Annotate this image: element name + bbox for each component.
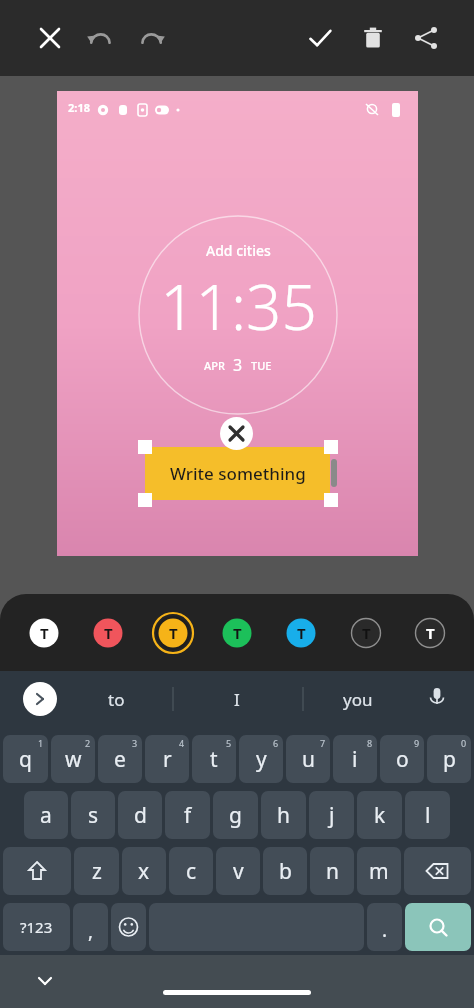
- button[interactable]: Backspace: [404, 847, 471, 895]
- staticText: T: [233, 623, 242, 643]
- button[interactable]: you: [310, 677, 406, 721]
- staticText: T: [362, 623, 371, 643]
- button[interactable]: q: [3, 735, 48, 783]
- button[interactable]: Text color 2: [86, 611, 130, 655]
- staticText: 5: [226, 737, 232, 749]
- button[interactable]: l: [405, 791, 450, 839]
- staticText: u: [302, 745, 315, 774]
- button[interactable]: .: [367, 903, 402, 951]
- button[interactable]: Search: [405, 903, 471, 951]
- button[interactable]: x: [122, 847, 166, 895]
- staticText: ?123: [20, 917, 53, 937]
- staticText: T: [40, 623, 49, 643]
- button[interactable]: Redo: [132, 18, 172, 58]
- staticText: b: [279, 857, 292, 886]
- staticText: s: [88, 801, 99, 830]
- button[interactable]: ?123: [3, 903, 70, 951]
- button[interactable]: g: [213, 791, 258, 839]
- staticText: 6: [273, 737, 279, 749]
- button[interactable]: Delete: [353, 18, 393, 58]
- button[interactable]: c: [169, 847, 213, 895]
- staticText: you: [343, 688, 373, 711]
- staticText: TUE: [251, 358, 272, 373]
- button[interactable]: j: [309, 791, 354, 839]
- button[interactable]: r: [145, 735, 189, 783]
- button[interactable]: Close: [30, 18, 70, 58]
- button[interactable]: ,: [73, 903, 108, 951]
- button[interactable]: d: [118, 791, 162, 839]
- staticText: 4: [179, 737, 185, 749]
- button[interactable]: p: [427, 735, 471, 783]
- button[interactable]: s: [71, 791, 115, 839]
- button[interactable]: Share: [406, 18, 446, 58]
- button[interactable]: to: [68, 677, 164, 721]
- button[interactable]: Undo: [80, 18, 120, 58]
- staticText: c: [186, 857, 197, 886]
- staticText: a: [40, 801, 52, 830]
- staticText: e: [114, 745, 126, 774]
- button[interactable]: m: [357, 847, 401, 895]
- button[interactable]: i: [333, 735, 377, 783]
- button[interactable]: n: [310, 847, 354, 895]
- button[interactable]: Text color 5: [279, 611, 323, 655]
- button[interactable]: f: [165, 791, 210, 839]
- staticText: 9: [414, 737, 420, 749]
- staticText: 1: [38, 737, 44, 749]
- staticText: T: [104, 623, 113, 643]
- button[interactable]: I: [189, 677, 285, 721]
- button[interactable]: Text color 1: [22, 611, 66, 655]
- staticText: f: [184, 801, 192, 830]
- button[interactable]: u: [286, 735, 330, 783]
- staticText: p: [443, 745, 456, 774]
- button[interactable]: Text color 6: [344, 611, 388, 655]
- button[interactable]: Text color 4: [215, 611, 259, 655]
- button[interactable]: e: [98, 735, 142, 783]
- button[interactable]: w: [51, 735, 95, 783]
- staticText: q: [19, 745, 32, 774]
- staticText: to: [108, 688, 125, 711]
- staticText: t: [210, 745, 218, 774]
- staticText: r: [163, 745, 172, 774]
- staticText: ,: [88, 918, 94, 944]
- button[interactable]: Hide keyboard: [28, 964, 62, 998]
- staticText: x: [138, 857, 150, 886]
- button[interactable]: h: [261, 791, 306, 839]
- button[interactable]: k: [357, 791, 402, 839]
- button[interactable]: Text color 7: [408, 611, 452, 655]
- staticText: v: [233, 857, 244, 886]
- staticText: 2:18: [68, 100, 90, 115]
- button[interactable]: o: [380, 735, 424, 783]
- staticText: k: [374, 801, 386, 830]
- button[interactable]: Voice input: [419, 681, 455, 717]
- staticText: 11:35: [160, 264, 317, 348]
- button[interactable]: Remove text: [220, 417, 253, 450]
- staticText: T: [426, 623, 435, 643]
- staticText: n: [326, 857, 339, 886]
- staticText: 2: [85, 737, 91, 749]
- staticText: d: [134, 801, 147, 830]
- button[interactable]: Emoji: [111, 903, 146, 951]
- button[interactable]: v: [216, 847, 260, 895]
- staticText: 0: [461, 737, 467, 749]
- button[interactable]: Shift: [3, 847, 71, 895]
- button[interactable]: Done: [300, 18, 340, 58]
- button[interactable]: t: [192, 735, 236, 783]
- staticText: y: [256, 745, 267, 774]
- staticText: I: [234, 688, 240, 711]
- staticText: .: [382, 917, 388, 943]
- staticText: T: [297, 623, 306, 643]
- staticText: l: [425, 801, 431, 830]
- button[interactable]: z: [74, 847, 119, 895]
- button[interactable]: y: [239, 735, 283, 783]
- button[interactable]: b: [263, 847, 307, 895]
- staticText: z: [92, 857, 102, 886]
- button[interactable]: More suggestions: [23, 682, 57, 716]
- button[interactable]: Text color 3: [151, 611, 195, 655]
- button[interactable]: Write something: [145, 447, 330, 500]
- button[interactable]: a: [24, 791, 68, 839]
